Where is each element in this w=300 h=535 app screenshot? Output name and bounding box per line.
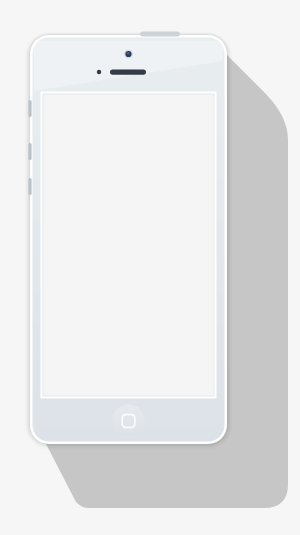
button[interactable]: White smartphone device mockup (0, 0, 300, 535)
